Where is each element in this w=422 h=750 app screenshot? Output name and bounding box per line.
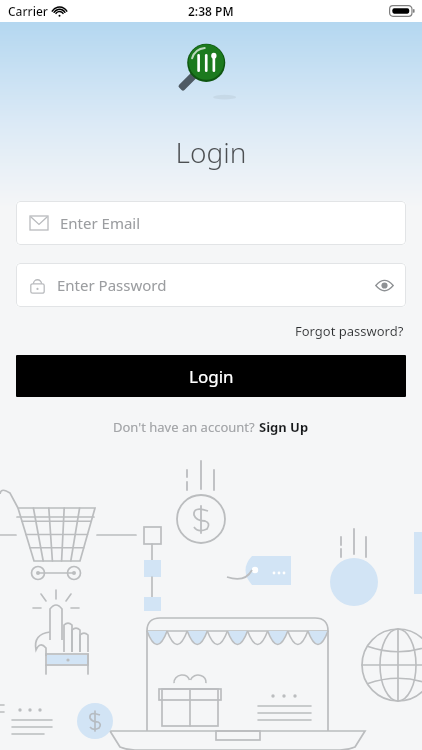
button[interactable]: Enter Email: [16, 201, 406, 245]
staticText: Login: [0, 133, 422, 171]
button[interactable]: Sign Up: [259, 418, 309, 436]
staticText: 2:38 PM: [188, 3, 234, 19]
staticText: Enter Password: [57, 275, 371, 295]
staticText: Enter Email: [60, 213, 141, 233]
staticText: Carrier: [8, 3, 48, 19]
staticText: Don't have an account?: [113, 418, 259, 436]
button[interactable]: Forgot password?: [291, 318, 408, 344]
button[interactable]: Login: [16, 355, 406, 397]
staticText: Forgot password?: [295, 322, 404, 340]
staticText: Sign Up: [259, 418, 309, 436]
button[interactable]: Show password: [371, 272, 397, 298]
staticText: Login: [189, 365, 234, 388]
button[interactable]: Enter Password: [16, 263, 406, 307]
